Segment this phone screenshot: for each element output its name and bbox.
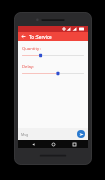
staticText: Delay: bbox=[22, 64, 35, 70]
button[interactable]: Home bbox=[47, 140, 59, 148]
button[interactable]: Send bbox=[77, 130, 85, 138]
button[interactable]: Back bbox=[18, 32, 88, 41]
button[interactable]: Back bbox=[27, 140, 39, 148]
button[interactable]: Msg bbox=[21, 132, 72, 137]
staticText: Msg bbox=[21, 132, 29, 137]
button[interactable]: Slider bbox=[22, 52, 84, 59]
button[interactable]: Recent apps bbox=[68, 140, 80, 148]
staticText: Quantity : bbox=[22, 46, 42, 52]
button[interactable]: Slider bbox=[22, 70, 84, 77]
staticText: To :Service bbox=[29, 34, 52, 40]
button[interactable]: Back bbox=[20, 33, 27, 40]
